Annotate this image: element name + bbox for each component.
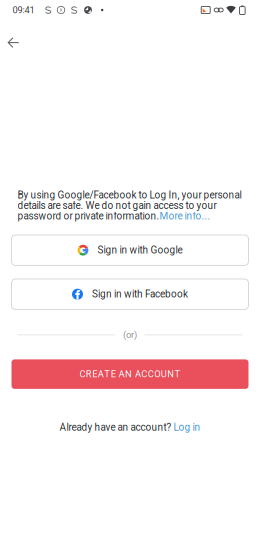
staticText: Sign in with Facebook xyxy=(92,288,188,300)
staticText: (or) xyxy=(123,329,137,340)
staticText: By using Google/Facebook to Log In, your… xyxy=(17,189,241,201)
staticText: password or private information. xyxy=(17,210,159,222)
button[interactable]: CREATE AN ACCOUNT xyxy=(11,359,248,389)
staticText: details are safe. We do not gain access … xyxy=(17,200,216,211)
staticText: Sign in with Google xyxy=(98,244,183,256)
button[interactable]: More info... xyxy=(159,210,210,222)
button[interactable]: Log in xyxy=(173,421,200,433)
button[interactable]: Back xyxy=(0,20,30,57)
button[interactable]: Sign in with Facebook xyxy=(11,279,248,309)
staticText: CREATE AN ACCOUNT xyxy=(79,369,181,380)
staticText: Already have an account? xyxy=(59,421,173,433)
staticText: 09:41 xyxy=(12,4,34,15)
button[interactable]: Sign in with Google xyxy=(11,235,248,265)
staticText: More info... xyxy=(159,210,210,222)
staticText: Log in xyxy=(173,421,200,433)
